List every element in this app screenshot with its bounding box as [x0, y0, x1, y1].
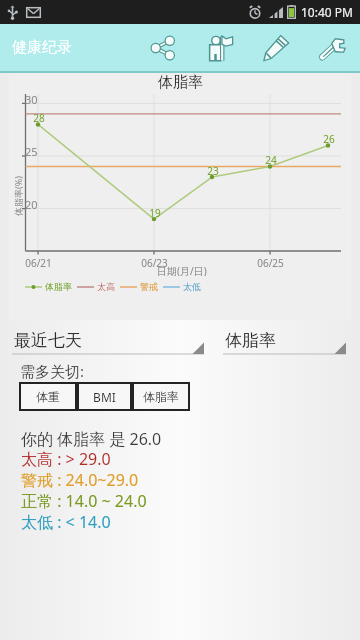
- button[interactable]: BMI: [77, 382, 132, 411]
- staticText: 警戒 : 24.0~29.0: [21, 469, 139, 491]
- staticText: 体重: [36, 389, 60, 404]
- staticText: 正常 : 14.0 ~ 24.0: [21, 490, 147, 512]
- staticText: 健康纪录: [12, 38, 72, 57]
- button[interactable]: 体脂率: [132, 382, 190, 411]
- staticText: 太高 : > 29.0: [21, 448, 111, 470]
- staticText: 太高: [97, 281, 115, 292]
- button[interactable]: Edit: [255, 25, 297, 71]
- staticText: 太低: [183, 281, 201, 292]
- staticText: 体脂率: [158, 73, 203, 91]
- staticText: 体脂率: [143, 389, 179, 404]
- staticText: 你的 体脂率 是 26.0: [21, 428, 162, 450]
- staticText: 28: [33, 111, 45, 123]
- button[interactable]: Goal: [199, 25, 241, 71]
- staticText: 最近七天: [14, 330, 82, 351]
- staticText: 25: [25, 144, 38, 158]
- staticText: 20: [25, 197, 38, 211]
- button[interactable]: Settings: [311, 25, 353, 71]
- button[interactable]: 最近七天: [12, 330, 204, 356]
- staticText: 日期(月/日): [157, 264, 207, 276]
- staticText: 30: [25, 92, 38, 106]
- staticText: 体脂率: [45, 281, 72, 292]
- staticText: 体脂率(%): [12, 176, 24, 216]
- staticText: 24: [265, 153, 277, 165]
- staticText: 太低 : < 14.0: [21, 511, 111, 533]
- staticText: 06/21: [25, 256, 52, 268]
- staticText: 26: [323, 132, 335, 144]
- staticText: 19: [149, 206, 161, 218]
- staticText: 10:40 PM: [301, 4, 353, 20]
- button[interactable]: Share: [142, 25, 184, 71]
- staticText: 警戒: [140, 281, 158, 292]
- button[interactable]: 体重: [19, 382, 77, 411]
- staticText: 06/23: [141, 256, 168, 268]
- staticText: 06/25: [257, 256, 284, 268]
- staticText: 需多关切:: [20, 361, 85, 381]
- button[interactable]: 体脂率: [223, 330, 346, 356]
- staticText: BMI: [93, 389, 116, 405]
- staticText: 23: [207, 164, 219, 176]
- staticText: 体脂率: [225, 330, 276, 351]
